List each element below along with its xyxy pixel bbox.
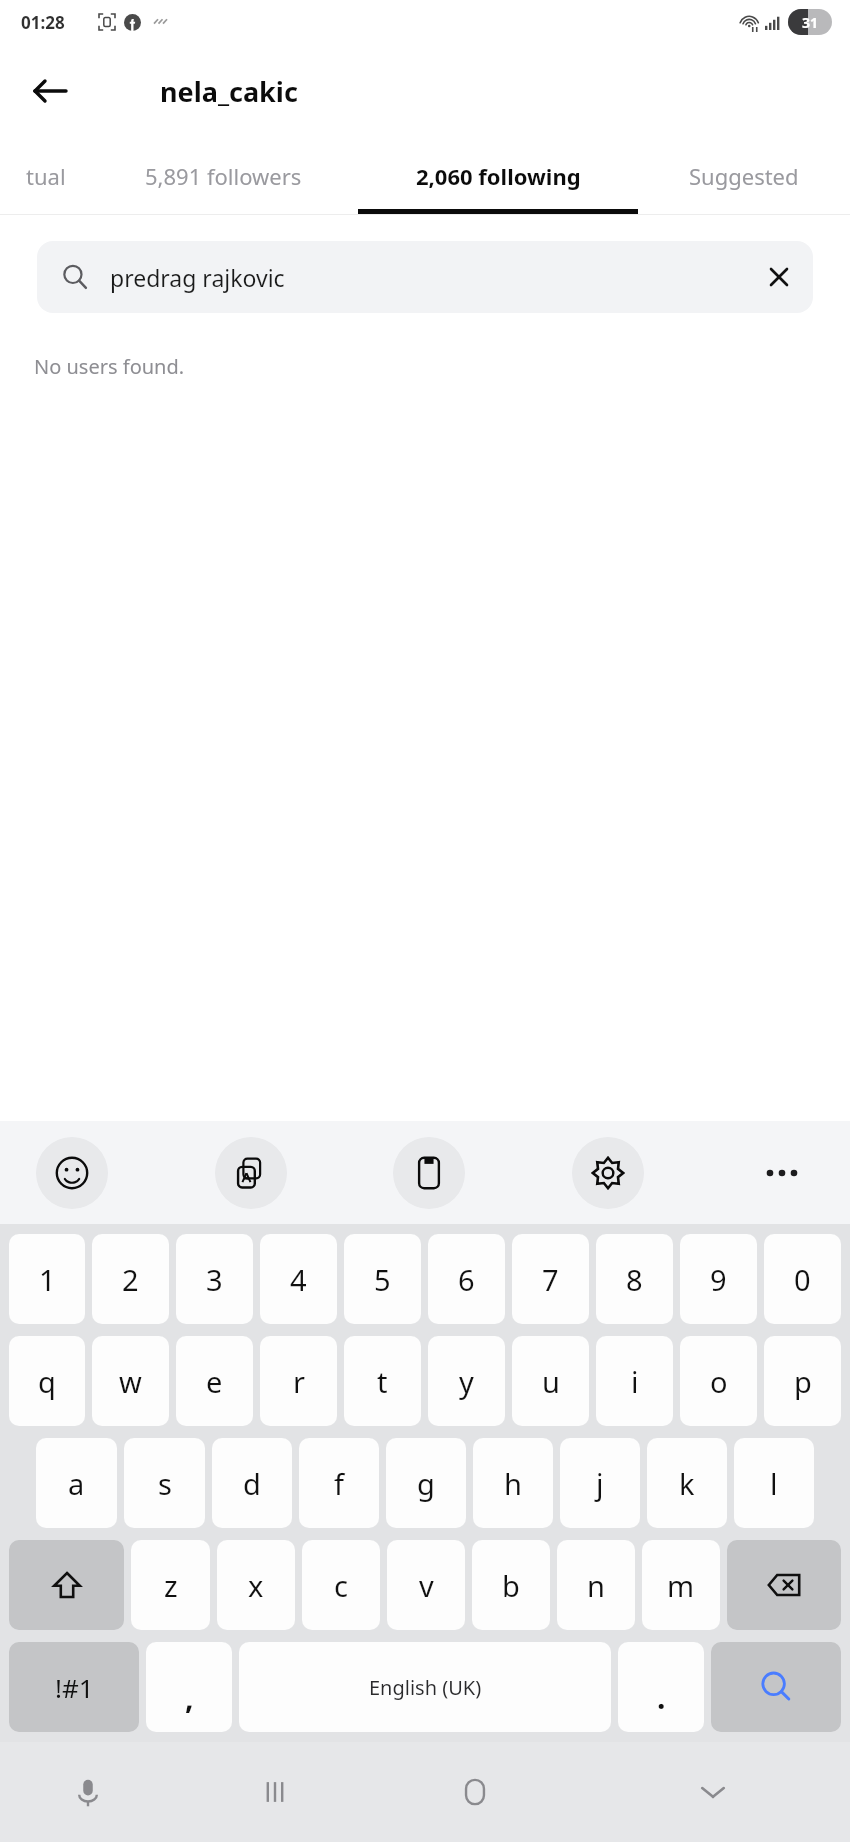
staticText: 31: [802, 13, 819, 32]
button[interactable]: 6: [428, 1234, 505, 1324]
button[interactable]: c: [302, 1540, 380, 1630]
button[interactable]: 2,060 following: [358, 138, 638, 214]
staticText: r: [293, 1362, 305, 1401]
staticText: 7: [542, 1260, 559, 1299]
button[interactable]: 5: [344, 1234, 421, 1324]
button[interactable]: Shift: [9, 1540, 124, 1630]
staticText: q: [38, 1362, 56, 1401]
staticText: predrag rajkovic: [110, 262, 751, 293]
staticText: 8: [626, 1260, 643, 1299]
staticText: tual: [26, 161, 66, 191]
staticText: !#1: [55, 1670, 94, 1705]
button[interactable]: u: [512, 1336, 589, 1426]
button[interactable]: h: [473, 1438, 553, 1528]
staticText: 6: [458, 1260, 475, 1299]
staticText: 5,891 followers: [145, 161, 302, 191]
button[interactable]: 3: [176, 1234, 253, 1324]
staticText: k: [679, 1464, 695, 1503]
button[interactable]: r: [260, 1336, 337, 1426]
staticText: 5: [374, 1260, 391, 1299]
button[interactable]: f: [299, 1438, 379, 1528]
button[interactable]: i: [596, 1336, 673, 1426]
button[interactable]: 1: [9, 1234, 85, 1324]
button[interactable]: 0: [764, 1234, 841, 1324]
button[interactable]: !#1: [9, 1642, 139, 1732]
staticText: y: [459, 1362, 474, 1401]
button[interactable]: v: [387, 1540, 465, 1630]
staticText: m: [667, 1566, 695, 1605]
button[interactable]: tual: [0, 138, 88, 214]
button[interactable]: English (UK): [239, 1642, 611, 1732]
button[interactable]: Home: [375, 1742, 575, 1842]
staticText: l: [770, 1464, 778, 1503]
button[interactable]: Back: [18, 59, 82, 123]
button[interactable]: 9: [680, 1234, 757, 1324]
button[interactable]: z: [131, 1540, 210, 1630]
staticText: 9: [710, 1260, 727, 1299]
button[interactable]: y: [428, 1336, 505, 1426]
button[interactable]: q: [9, 1336, 85, 1426]
button[interactable]: More options: [750, 1141, 814, 1205]
button[interactable]: Hide keyboard: [575, 1742, 850, 1842]
button[interactable]: 5,891 followers: [88, 138, 358, 214]
staticText: x: [248, 1566, 264, 1605]
staticText: v: [419, 1566, 434, 1605]
button[interactable]: w: [92, 1336, 169, 1426]
button[interactable]: g: [386, 1438, 466, 1528]
button[interactable]: Backspace: [727, 1540, 841, 1630]
staticText: z: [164, 1566, 178, 1605]
button[interactable]: Clipboard: [393, 1137, 465, 1209]
button[interactable]: p: [764, 1336, 841, 1426]
staticText: u: [542, 1362, 560, 1401]
button[interactable]: 8: [596, 1234, 673, 1324]
button[interactable]: predrag rajkovic: [37, 241, 813, 313]
button[interactable]: m: [642, 1540, 720, 1630]
staticText: h: [504, 1464, 522, 1503]
button[interactable]: Voice input: [0, 1742, 175, 1842]
staticText: i: [631, 1362, 639, 1401]
button[interactable]: Search: [711, 1642, 841, 1732]
button[interactable]: j: [560, 1438, 640, 1528]
staticText: j: [596, 1464, 604, 1503]
staticText: 2,060 following: [416, 161, 581, 191]
button[interactable]: s: [124, 1438, 205, 1528]
staticText: n: [587, 1566, 605, 1605]
button[interactable]: a: [36, 1438, 117, 1528]
button[interactable]: Recent apps: [175, 1742, 375, 1842]
staticText: g: [417, 1464, 435, 1503]
button[interactable]: Keyboard settings: [572, 1137, 644, 1209]
button[interactable]: b: [472, 1540, 550, 1630]
staticText: b: [502, 1566, 520, 1605]
staticText: 4: [290, 1260, 307, 1299]
button[interactable]: k: [647, 1438, 727, 1528]
staticText: c: [334, 1566, 348, 1605]
button[interactable]: Translate: [215, 1137, 287, 1209]
button[interactable]: Suggested: [638, 138, 850, 214]
staticText: s: [158, 1464, 172, 1503]
button[interactable]: l: [734, 1438, 814, 1528]
staticText: nela_cakic: [160, 73, 298, 110]
button[interactable]: o: [680, 1336, 757, 1426]
staticText: t: [377, 1362, 388, 1401]
button[interactable]: Emoji: [36, 1137, 108, 1209]
button[interactable]: 4: [260, 1234, 337, 1324]
staticText: f: [334, 1464, 344, 1503]
button[interactable]: 7: [512, 1234, 589, 1324]
button[interactable]: d: [212, 1438, 292, 1528]
button[interactable]: Clear search: [751, 249, 807, 305]
staticText: 0: [794, 1260, 811, 1299]
button[interactable]: n: [557, 1540, 635, 1630]
staticText: No users found.: [34, 353, 185, 380]
button[interactable]: 2: [92, 1234, 169, 1324]
button[interactable]: x: [217, 1540, 295, 1630]
button[interactable]: t: [344, 1336, 421, 1426]
staticText: English (UK): [369, 1674, 482, 1701]
button[interactable]: ,: [146, 1642, 232, 1732]
button[interactable]: e: [176, 1336, 253, 1426]
staticText: 1: [39, 1260, 56, 1299]
button[interactable]: .: [618, 1642, 704, 1732]
staticText: e: [206, 1362, 223, 1401]
staticText: .: [657, 1677, 666, 1718]
staticText: 3: [206, 1260, 223, 1299]
staticText: p: [794, 1362, 812, 1401]
